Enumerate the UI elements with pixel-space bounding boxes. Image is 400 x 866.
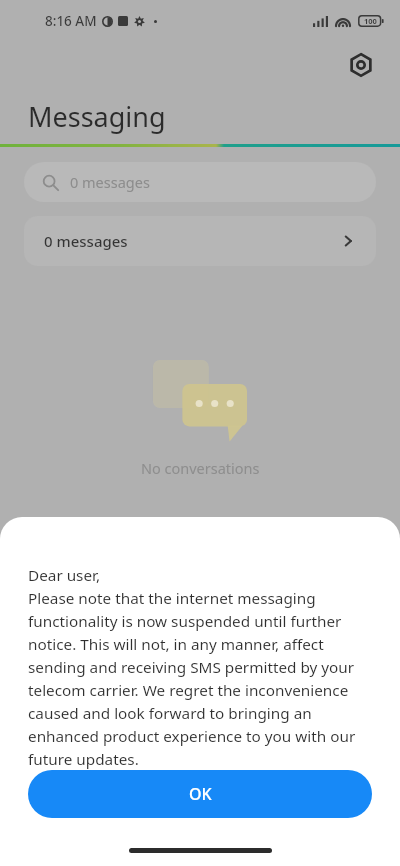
button[interactable]: 0 messages [24,216,376,266]
staticText: 100 [364,16,377,26]
staticText: 0 messages [70,172,150,192]
staticText: Messaging [28,98,166,135]
staticText: Dear user, Please note that the internet… [28,565,372,770]
staticText: 8:16 AM [45,12,97,30]
button[interactable]: OK [28,770,372,818]
staticText: OK [189,783,212,805]
button[interactable]: Settings [342,46,380,84]
staticText: 0 messages [44,231,128,251]
button[interactable]: 0 messages [24,162,376,202]
staticText: No conversations [141,458,260,478]
